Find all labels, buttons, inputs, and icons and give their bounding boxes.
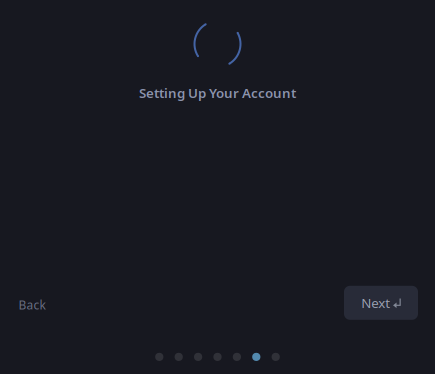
button[interactable]: Page 1: [155, 353, 163, 361]
staticText: Next: [361, 294, 390, 312]
button[interactable]: Next: [344, 286, 418, 320]
button[interactable]: Back: [0, 286, 64, 320]
button[interactable]: Page 4: [213, 353, 222, 361]
staticText: Back: [18, 297, 45, 313]
button[interactable]: Page 6: [252, 353, 260, 361]
button[interactable]: Page 7: [272, 353, 280, 361]
staticText: Setting Up Your Account: [139, 84, 296, 102]
button[interactable]: Page 2: [175, 353, 183, 361]
button[interactable]: Page 3: [194, 353, 202, 361]
button[interactable]: Page 5: [233, 353, 241, 361]
